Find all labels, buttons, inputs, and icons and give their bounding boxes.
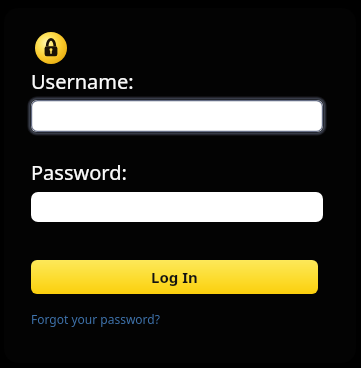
button[interactable] (31, 100, 323, 132)
other: Secure login (35, 32, 67, 64)
button[interactable]: Log In (31, 260, 318, 294)
button[interactable]: Forgot your password? (31, 311, 160, 327)
staticText: Log In (151, 267, 198, 287)
staticText: Password: (31, 159, 127, 186)
staticText: Username: (31, 68, 134, 95)
staticText: Forgot your password? (31, 311, 160, 327)
button[interactable] (31, 192, 323, 222)
